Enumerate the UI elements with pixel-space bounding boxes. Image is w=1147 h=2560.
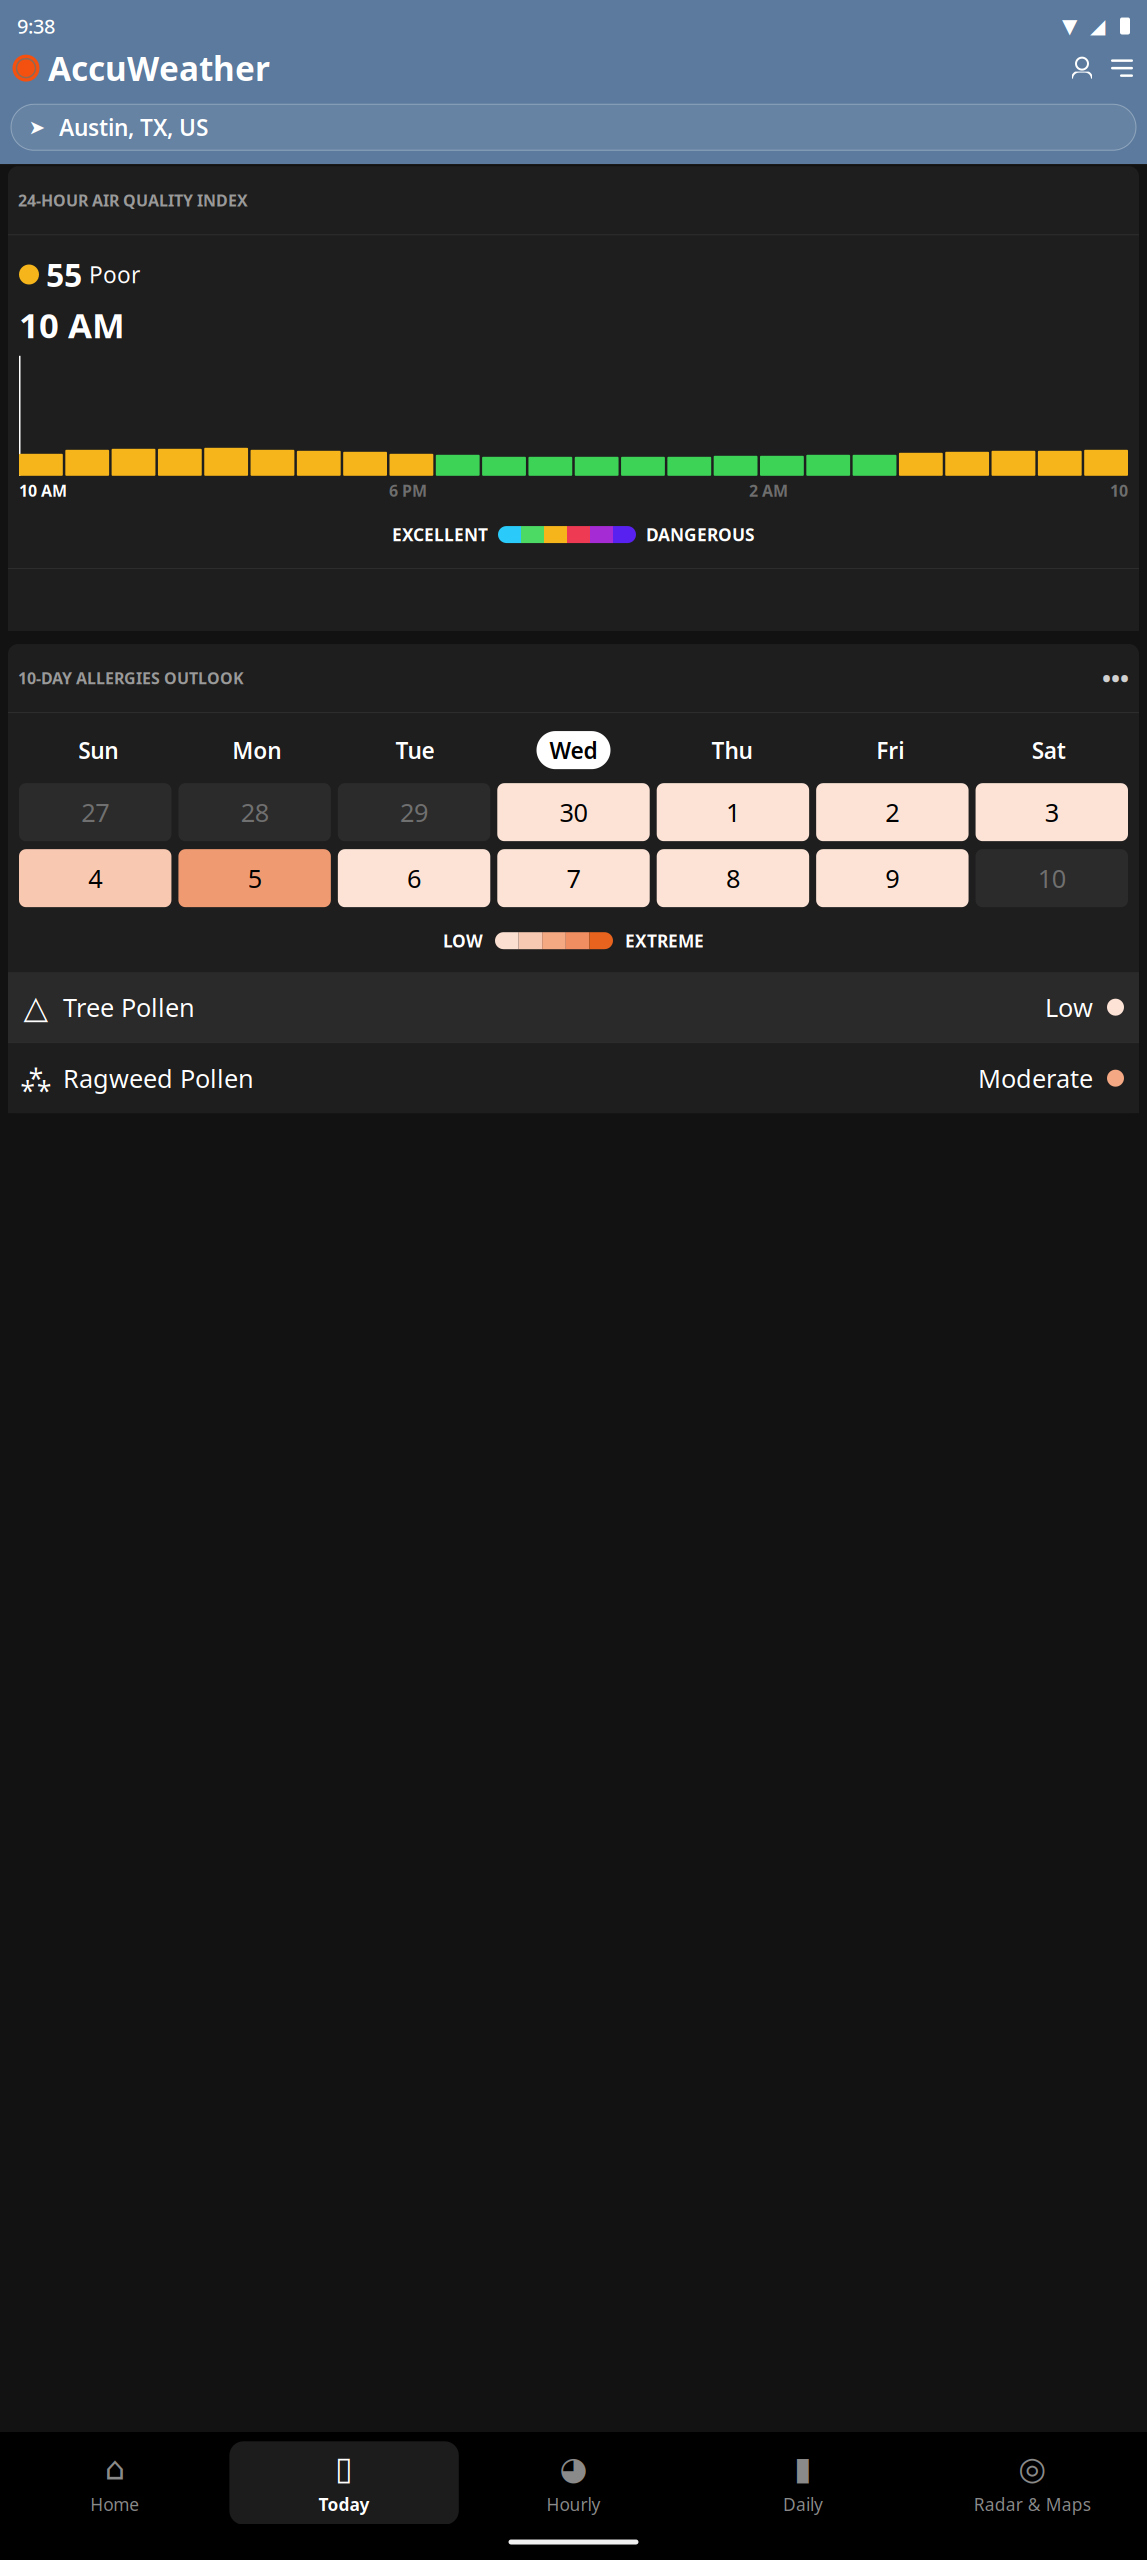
staticText: Hourly	[546, 2493, 600, 2516]
staticText: ⌂	[105, 2450, 125, 2487]
staticText: LOW	[443, 929, 483, 952]
staticText: 29	[400, 795, 428, 829]
button[interactable]: Menu	[1109, 55, 1135, 81]
button[interactable]: 3	[976, 783, 1128, 841]
staticText: Tree Pollen	[63, 990, 195, 1024]
staticText: 1	[726, 795, 740, 829]
staticText: ⁂	[21, 1060, 51, 1096]
button[interactable]: Fri	[863, 731, 917, 769]
staticText: Sat	[1032, 735, 1066, 765]
button[interactable]: Tue	[383, 731, 448, 769]
staticText: 2	[885, 795, 899, 829]
staticText: 10	[1038, 861, 1066, 895]
staticText: ◎	[1018, 2450, 1046, 2487]
staticText: Sun	[78, 735, 118, 765]
button[interactable]: 30	[497, 783, 650, 841]
staticText: Today	[319, 2493, 370, 2516]
staticText: 9:38	[17, 13, 55, 39]
staticText: 10	[1110, 480, 1128, 501]
staticText: AccuWeather	[48, 46, 270, 90]
staticText: 9	[885, 861, 899, 895]
staticText: Thu	[711, 735, 752, 765]
button[interactable]: More options	[1102, 662, 1129, 694]
staticText: ◢	[1090, 15, 1105, 37]
staticText: 2 AM	[749, 480, 788, 501]
staticText: Ragweed Pollen	[63, 1061, 254, 1095]
button[interactable]: 2	[816, 783, 968, 841]
staticText: Austin, TX, US	[59, 112, 208, 142]
staticText: 4	[88, 861, 102, 895]
staticText: Poor	[89, 259, 140, 290]
staticText: EXTREME	[625, 929, 704, 952]
staticText: Home	[90, 2493, 139, 2516]
button[interactable]: Mon	[219, 731, 294, 769]
staticText: 8	[726, 861, 740, 895]
button[interactable]: 29	[338, 783, 490, 841]
button[interactable]: Sun	[65, 731, 131, 769]
staticText: 7	[566, 861, 580, 895]
staticText: 10 AM	[19, 480, 67, 501]
button[interactable]: Thu	[698, 731, 765, 769]
button[interactable]: ⌂	[0, 2441, 229, 2525]
button[interactable]: ➤	[11, 104, 1136, 150]
button[interactable]: ⁂	[8, 1043, 1139, 1113]
staticText: 10-DAY ALLERGIES OUTLOOK	[18, 667, 244, 689]
button[interactable]: 8	[657, 849, 809, 907]
button[interactable]: 10	[976, 849, 1128, 907]
button[interactable]: ◎	[918, 2441, 1147, 2525]
button[interactable]: 7	[497, 849, 650, 907]
staticText: Moderate	[978, 1061, 1093, 1095]
button[interactable]: Account	[1069, 55, 1095, 81]
staticText: 24-HOUR AIR QUALITY INDEX	[18, 190, 248, 211]
button[interactable]: ▯	[229, 2441, 459, 2525]
staticText: Fri	[876, 735, 904, 765]
staticText: △	[23, 989, 48, 1025]
staticText: 28	[241, 795, 269, 829]
button[interactable]: AccuWeather	[12, 46, 270, 90]
button[interactable]: 5	[178, 849, 331, 907]
staticText: •••	[1102, 662, 1129, 694]
staticText: Daily	[783, 2493, 823, 2516]
staticText: Radar & Maps	[974, 2493, 1091, 2516]
staticText: Wed	[549, 735, 597, 765]
staticText: 30	[559, 795, 587, 829]
staticText: ▼	[1062, 15, 1077, 37]
staticText: DANGEROUS	[646, 523, 755, 546]
button[interactable]: △	[8, 972, 1139, 1042]
button[interactable]: 4	[19, 849, 171, 907]
button[interactable]: Wed	[536, 731, 610, 769]
staticText: Tue	[396, 735, 435, 765]
button[interactable]: 6	[338, 849, 490, 907]
staticText: ▮	[794, 2450, 812, 2487]
button[interactable]: ◕	[459, 2441, 688, 2525]
staticText: 3	[1045, 795, 1059, 829]
staticText: Mon	[232, 735, 281, 765]
staticText: 6	[407, 861, 421, 895]
staticText: Low	[1045, 990, 1093, 1024]
button[interactable]: 27	[19, 783, 171, 841]
staticText: ◕	[559, 2450, 587, 2487]
staticText: ▯	[335, 2450, 353, 2487]
button[interactable]: 9	[816, 849, 968, 907]
staticText: EXCELLENT	[392, 523, 488, 546]
button[interactable]: ▮	[688, 2441, 918, 2525]
button[interactable]: Sat	[1019, 731, 1079, 769]
staticText: 6 PM	[389, 480, 427, 501]
staticText: 27	[81, 795, 109, 829]
button[interactable]: 28	[178, 783, 331, 841]
button[interactable]: 1	[657, 783, 809, 841]
staticText: 55	[46, 253, 82, 296]
staticText: ➤	[28, 116, 45, 139]
staticText: 5	[248, 861, 262, 895]
staticText: 10 AM	[19, 302, 125, 348]
